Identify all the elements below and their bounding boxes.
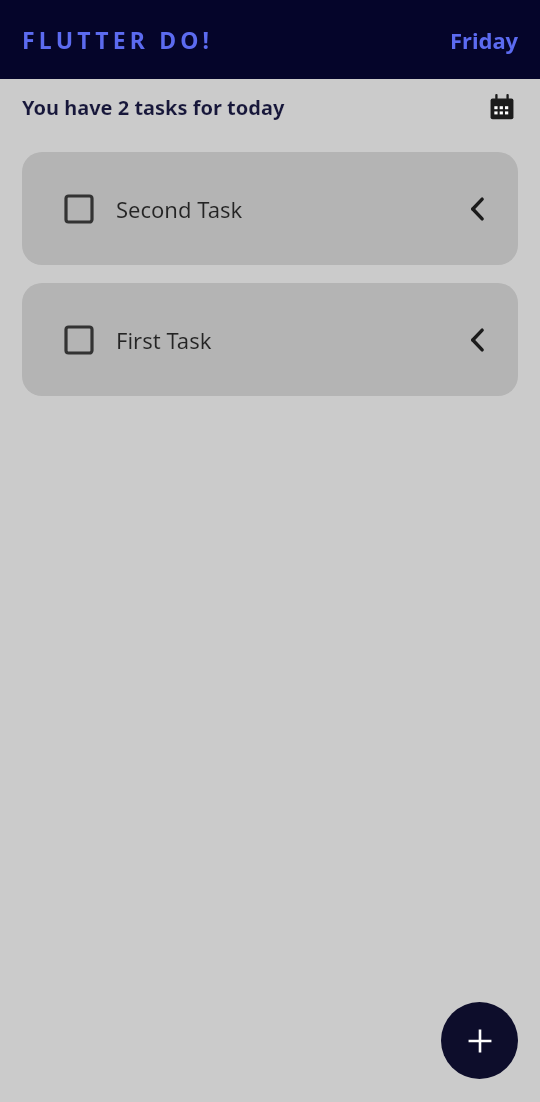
staticText: FLUTTER DO! — [22, 24, 214, 55]
button[interactable]: Toggle First Task — [62, 323, 96, 357]
button[interactable]: Expand First Task — [456, 318, 500, 362]
button[interactable]: Toggle Second Task — [22, 152, 518, 265]
staticText: Friday — [450, 25, 519, 55]
staticText: You have 2 tasks for today — [22, 94, 285, 121]
staticText: Second Task — [116, 194, 243, 224]
button[interactable]: Toggle First Task — [22, 283, 518, 396]
staticText: First Task — [116, 325, 212, 355]
button[interactable]: Add task — [441, 1002, 518, 1079]
button[interactable]: Toggle Second Task — [62, 192, 96, 226]
button[interactable]: Expand Second Task — [456, 187, 500, 231]
button[interactable]: Calendar — [484, 89, 520, 125]
